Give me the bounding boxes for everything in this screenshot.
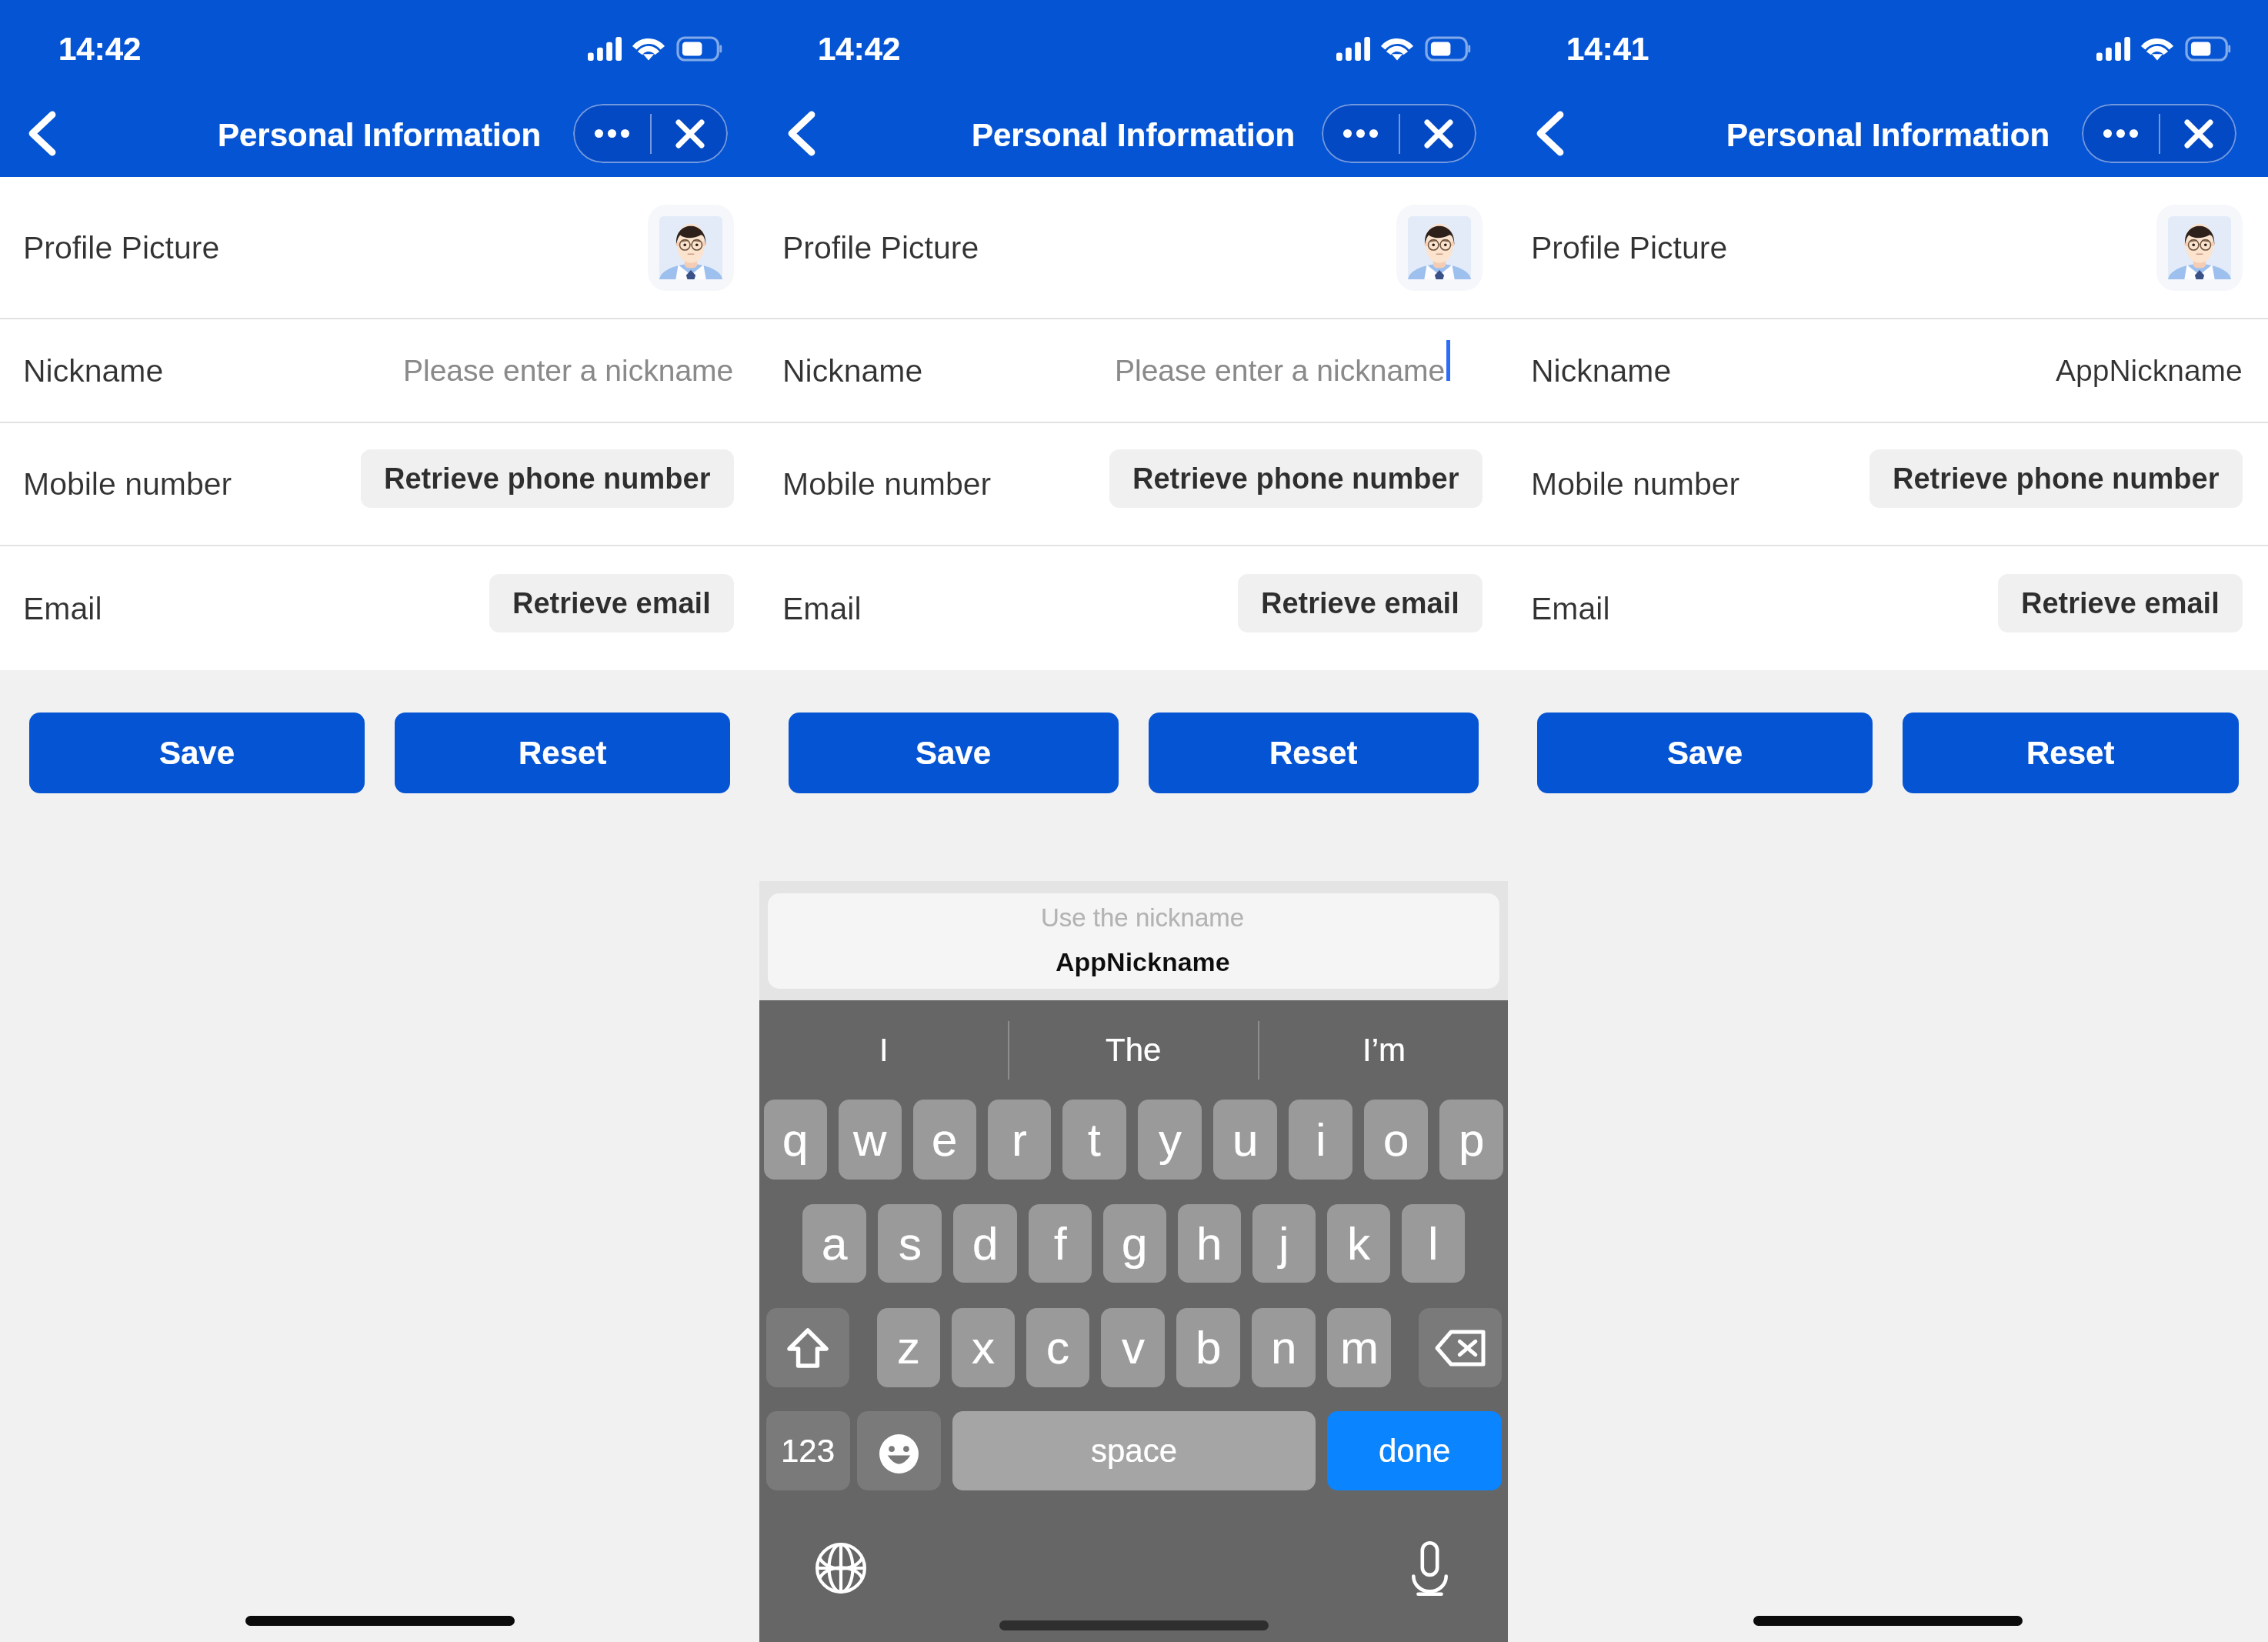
button[interactable]: Close [1400, 104, 1476, 163]
button[interactable]: m [1327, 1308, 1391, 1387]
staticText: Nickname [23, 353, 164, 389]
button[interactable]: Mobile number [0, 423, 759, 545]
button[interactable]: Reset [1149, 713, 1479, 793]
button[interactable]: Back [8, 112, 76, 155]
button[interactable]: Nickname [1508, 319, 2268, 422]
button[interactable]: Reset [1903, 713, 2239, 793]
button[interactable]: Mobile number [1508, 423, 2268, 545]
button[interactable]: Mobile number [759, 423, 1508, 545]
staticText: The [1106, 1032, 1162, 1068]
button[interactable]: c [1026, 1308, 1089, 1387]
button[interactable]: Email [759, 546, 1508, 670]
button[interactable]: The [1009, 1000, 1258, 1100]
staticText: e [932, 1114, 958, 1166]
button[interactable]: Emoji [857, 1411, 941, 1490]
button[interactable]: Retrieve phone number [1869, 449, 2243, 508]
button[interactable]: d [953, 1204, 1017, 1283]
button[interactable]: w [839, 1100, 902, 1180]
staticText: z [897, 1322, 920, 1373]
button[interactable]: Use the nickname [768, 893, 1499, 989]
staticText: Profile Picture [782, 230, 979, 265]
button[interactable]: space [952, 1411, 1316, 1490]
button[interactable]: Retrieve email [1998, 574, 2243, 632]
button[interactable]: b [1176, 1308, 1240, 1387]
staticText: Nickname [1531, 353, 1672, 389]
button[interactable]: Back [1516, 112, 1584, 155]
button[interactable]: I [759, 1000, 1008, 1100]
button[interactable]: Profile picture [648, 205, 734, 291]
button[interactable]: Close [2160, 104, 2236, 163]
staticText: d [972, 1218, 999, 1270]
staticText: o [1383, 1114, 1409, 1166]
button[interactable]: f [1029, 1204, 1092, 1283]
button[interactable]: Save [1537, 713, 1873, 793]
staticText: Reset [519, 735, 607, 771]
staticText: Retrieve email [2021, 587, 2220, 619]
button[interactable]: x [952, 1308, 1015, 1387]
button[interactable]: h [1178, 1204, 1241, 1283]
staticText: q [782, 1114, 809, 1166]
staticText: y [1159, 1114, 1182, 1166]
staticText: Nickname [782, 353, 923, 389]
button[interactable]: i [1289, 1100, 1352, 1180]
button[interactable]: Back [768, 112, 835, 155]
button[interactable]: e [913, 1100, 976, 1180]
button[interactable]: I’m [1259, 1000, 1508, 1100]
staticText: b [1196, 1322, 1222, 1373]
button[interactable]: Nickname [0, 319, 759, 422]
button[interactable]: done [1327, 1411, 1502, 1490]
button[interactable]: u [1213, 1100, 1277, 1180]
button[interactable]: Save [789, 713, 1119, 793]
button[interactable]: t [1062, 1100, 1126, 1180]
button[interactable]: Retrieve phone number [1109, 449, 1483, 508]
staticText: Mobile number [1531, 466, 1740, 502]
button[interactable]: l [1402, 1204, 1465, 1283]
staticText: Personal Information [1726, 117, 2050, 153]
button[interactable]: More options [1322, 104, 1399, 163]
button[interactable]: Reset [395, 713, 730, 793]
button[interactable]: Profile picture [2156, 205, 2243, 291]
staticText: Profile Picture [23, 230, 220, 265]
button[interactable]: p [1439, 1100, 1503, 1180]
button[interactable]: Profile picture [1396, 205, 1483, 291]
button[interactable]: Delete [1419, 1308, 1502, 1387]
button[interactable]: 123 [766, 1411, 850, 1490]
button[interactable]: g [1103, 1204, 1166, 1283]
button[interactable]: Shift [766, 1308, 849, 1387]
staticText: x [972, 1322, 995, 1373]
button[interactable]: v [1101, 1308, 1165, 1387]
button[interactable]: More options [573, 104, 650, 163]
button[interactable]: Retrieve email [489, 574, 734, 632]
button[interactable]: s [878, 1204, 942, 1283]
button[interactable]: Close [652, 104, 728, 163]
button[interactable]: r [988, 1100, 1051, 1180]
button[interactable]: Change keyboard [807, 1534, 875, 1602]
button[interactable]: Nickname [759, 319, 1508, 422]
staticText: done [1379, 1433, 1451, 1469]
button[interactable]: Profile Picture [1508, 177, 2268, 318]
button[interactable]: Save [29, 713, 365, 793]
button[interactable]: y [1138, 1100, 1202, 1180]
button[interactable]: Email [0, 546, 759, 670]
button[interactable]: j [1252, 1204, 1316, 1283]
button[interactable]: Profile Picture [759, 177, 1508, 318]
button[interactable]: k [1327, 1204, 1390, 1283]
button[interactable]: o [1364, 1100, 1428, 1180]
staticText: l [1428, 1218, 1439, 1270]
button[interactable]: Dictate [1396, 1534, 1463, 1602]
staticText: Please enter a nickname [1115, 354, 1446, 388]
button[interactable]: q [764, 1100, 827, 1180]
button[interactable]: z [877, 1308, 940, 1387]
staticText: n [1271, 1322, 1297, 1373]
staticText: w [853, 1114, 887, 1166]
button[interactable]: a [802, 1204, 866, 1283]
button[interactable]: Email [1508, 546, 2268, 670]
button[interactable]: More options [2082, 104, 2159, 163]
button[interactable]: Retrieve phone number [361, 449, 734, 508]
staticText: Personal Information [972, 117, 1296, 153]
staticText: 14:41 [1566, 31, 1649, 67]
button[interactable]: Retrieve email [1238, 574, 1483, 632]
staticText: Retrieve email [1261, 587, 1459, 619]
button[interactable]: n [1252, 1308, 1316, 1387]
button[interactable]: Profile Picture [0, 177, 759, 318]
